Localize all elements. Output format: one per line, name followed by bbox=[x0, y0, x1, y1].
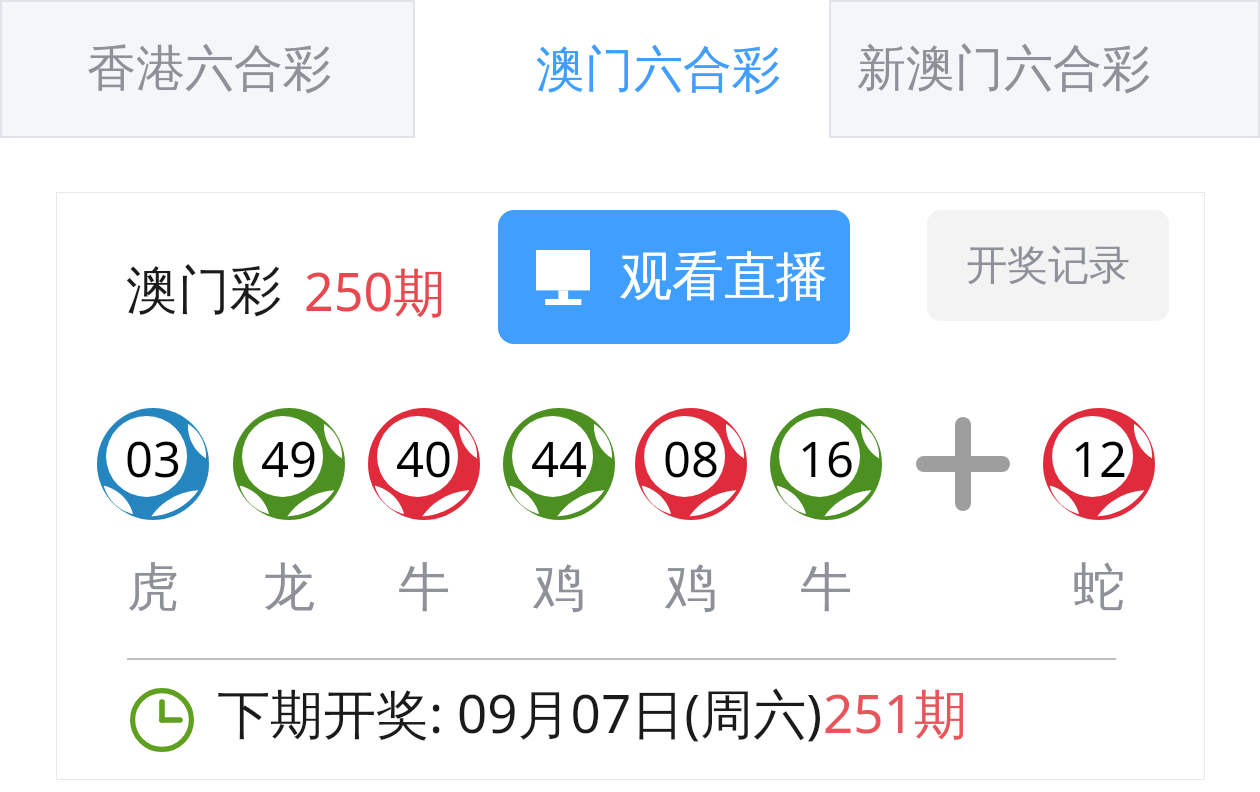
staticText: 观看直播 bbox=[620, 244, 828, 310]
staticText: 44 bbox=[531, 425, 588, 492]
staticText: 03 bbox=[125, 425, 182, 492]
other: Ball 08 鸡 bbox=[635, 408, 747, 520]
staticText: 新澳门六合彩 bbox=[857, 38, 1151, 100]
staticText: 16 bbox=[798, 425, 855, 492]
other: Ball 49 龙 bbox=[233, 408, 345, 520]
button[interactable]: 观看直播 bbox=[498, 210, 850, 344]
staticText: 牛 bbox=[398, 555, 450, 621]
staticText: 下期开奖: 09月07日(周六) bbox=[217, 676, 823, 748]
staticText: 澳门六合彩 bbox=[536, 39, 781, 101]
staticText: 虎 bbox=[127, 555, 179, 621]
staticText: 蛇 bbox=[1073, 555, 1125, 621]
staticText: 49 bbox=[261, 425, 318, 492]
button[interactable]: 澳门六合彩 bbox=[415, 0, 829, 140]
button[interactable]: 新澳门六合彩 bbox=[829, 0, 1260, 138]
staticText: 龙 bbox=[263, 555, 315, 621]
staticText: 12 bbox=[1071, 425, 1128, 492]
staticText: 08 bbox=[663, 425, 720, 492]
staticText: 澳门彩 bbox=[126, 258, 282, 324]
other: Ball 12 蛇 bbox=[1043, 408, 1155, 520]
staticText: 251期 bbox=[823, 676, 967, 748]
other: Ball 03 虎 bbox=[97, 408, 209, 520]
button[interactable]: 开奖记录 bbox=[927, 210, 1169, 321]
other: Next draw time bbox=[130, 688, 194, 752]
staticText: 鸡 bbox=[665, 555, 717, 621]
staticText: 250期 bbox=[304, 255, 446, 326]
other: Ball 16 牛 bbox=[770, 408, 882, 520]
other: Ball 40 牛 bbox=[368, 408, 480, 520]
staticText: 牛 bbox=[800, 555, 852, 621]
staticText: 鸡 bbox=[533, 555, 585, 621]
staticText: 香港六合彩 bbox=[87, 38, 332, 100]
staticText: 开奖记录 bbox=[966, 240, 1130, 292]
button[interactable]: 香港六合彩 bbox=[0, 0, 415, 138]
other: Special number bbox=[916, 417, 1010, 511]
other: Ball 44 鸡 bbox=[503, 408, 615, 520]
staticText: 40 bbox=[396, 425, 453, 492]
